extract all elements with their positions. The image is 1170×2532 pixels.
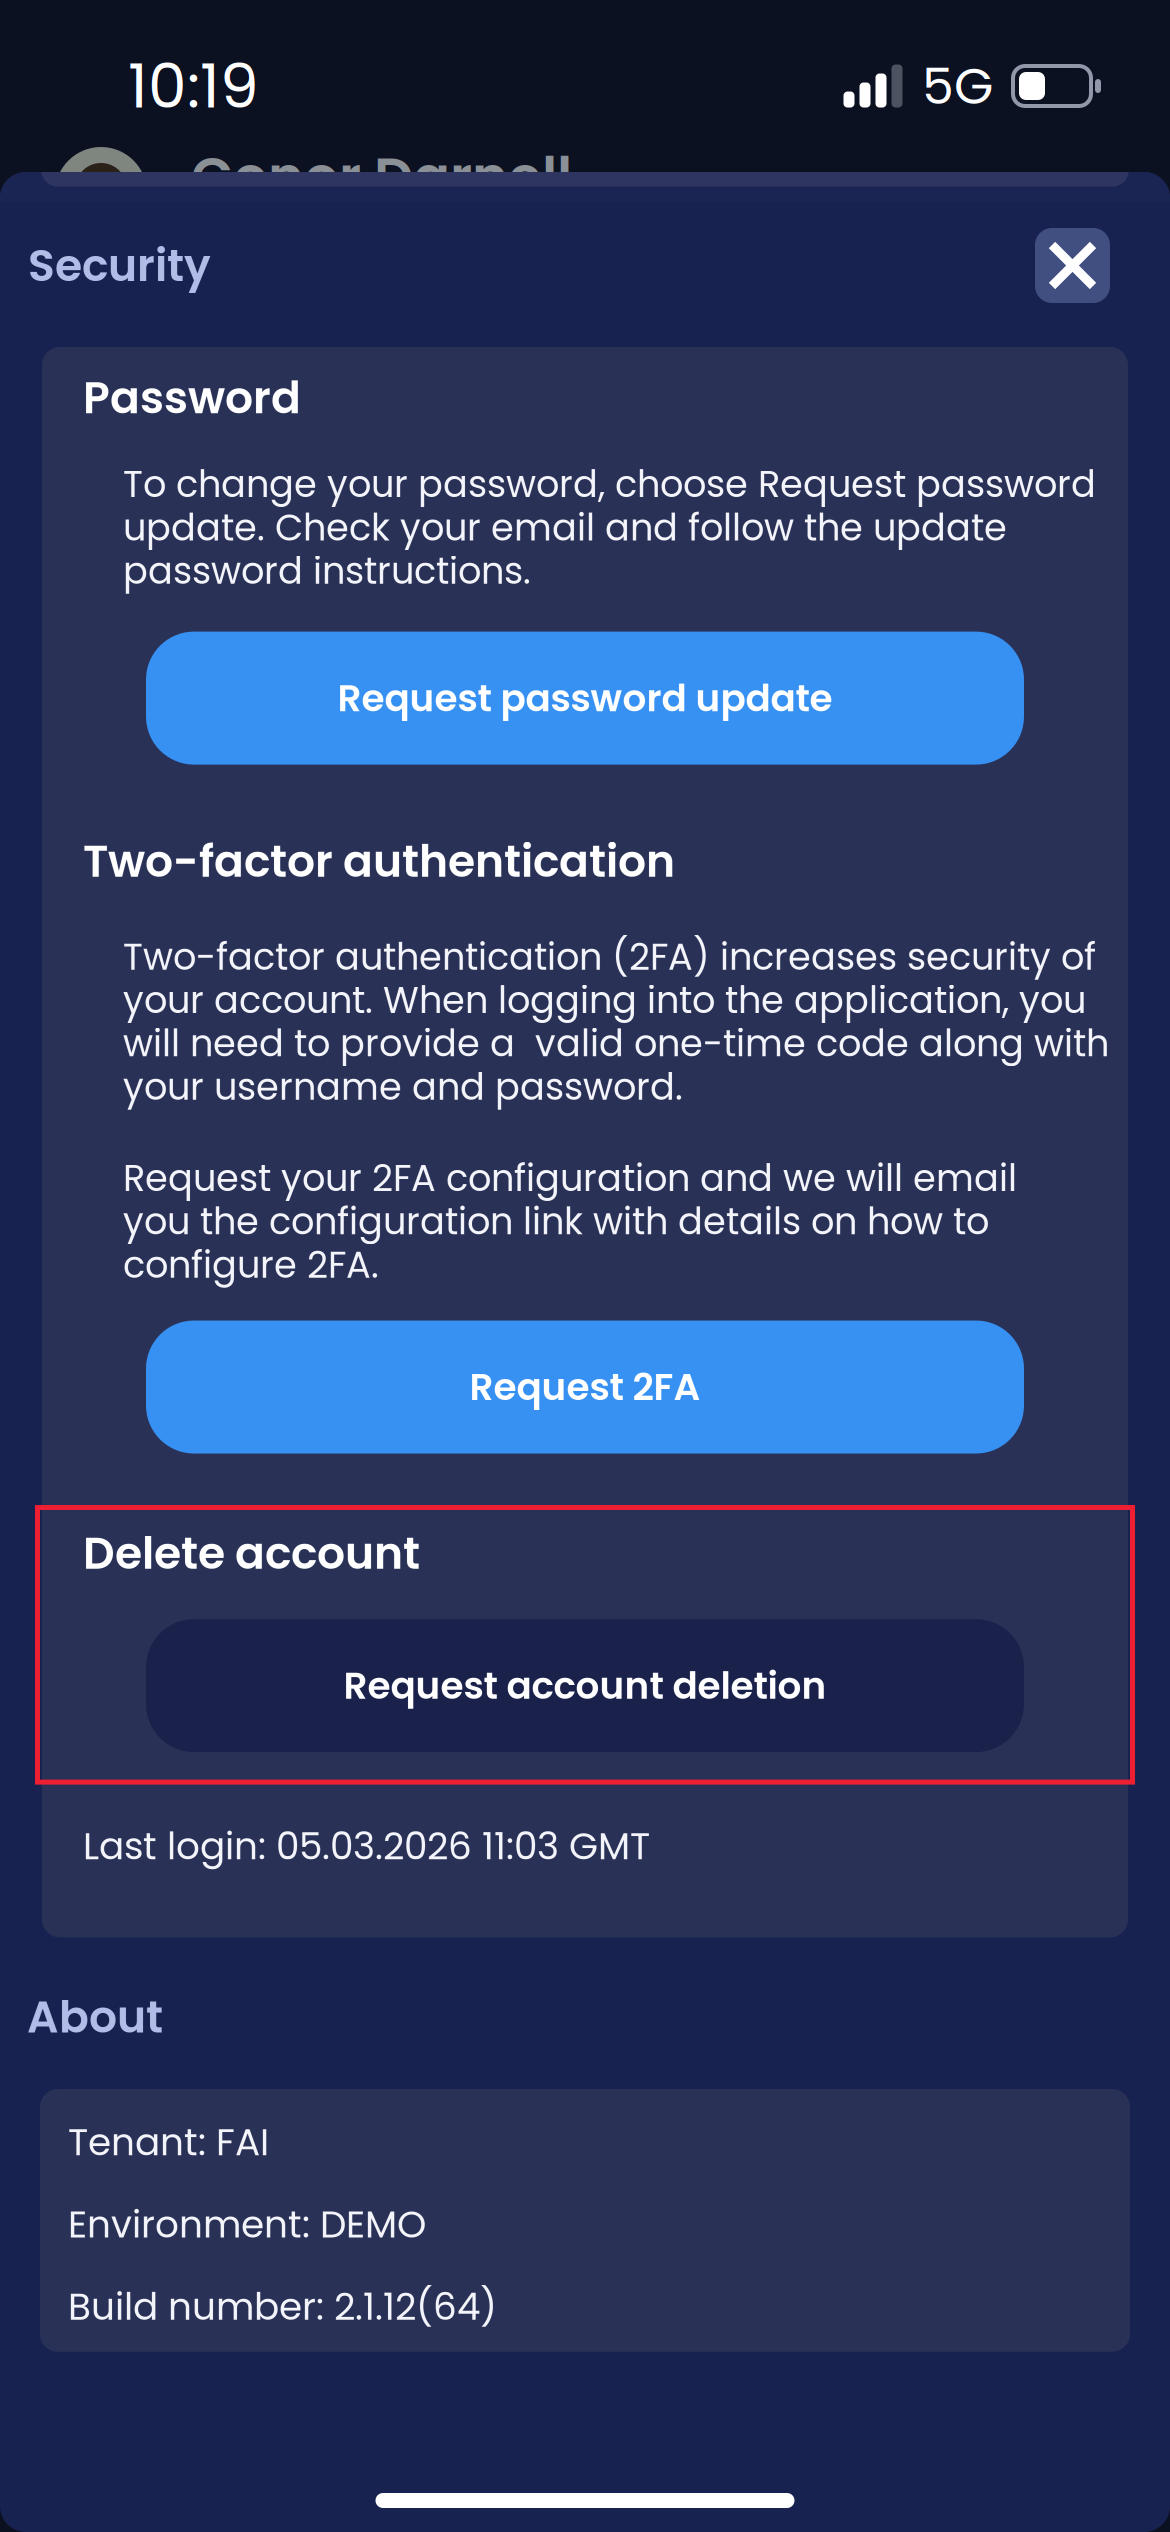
staticText: Request account deletion: [343, 1659, 826, 1712]
staticText: Request 2FA: [469, 1361, 700, 1413]
staticText: Conor Darnell: [191, 139, 572, 215]
staticText: Password: [83, 367, 301, 429]
staticText: Last login: 05.03.2026 11:03 GMT: [83, 1820, 650, 1872]
staticText: Delete account: [83, 1522, 420, 1584]
staticText: About: [27, 1986, 163, 2048]
staticText: To change your password, choose Request …: [123, 459, 1096, 597]
staticText: Security: [28, 235, 211, 296]
staticText: Request password update: [337, 672, 832, 724]
staticText: 10:19: [128, 43, 259, 129]
staticText: Environment: DEMO: [68, 2198, 426, 2251]
staticText: Two-factor authentication: [83, 831, 675, 892]
staticText: Two-factor authentication (2FA) increase…: [123, 931, 1109, 1112]
button[interactable]: Request account deletion: [146, 1619, 1024, 1752]
staticText: Request your 2FA configuration and we wi…: [123, 1152, 1017, 1290]
button[interactable]: Request password update: [146, 632, 1024, 765]
staticText: Build number: 2.1.12(64): [68, 2280, 497, 2333]
button[interactable]: Close: [1035, 228, 1110, 303]
button[interactable]: Request 2FA: [146, 1320, 1024, 1453]
staticText: Tenant: FAI: [68, 2116, 269, 2168]
staticText: 5G: [922, 50, 993, 121]
